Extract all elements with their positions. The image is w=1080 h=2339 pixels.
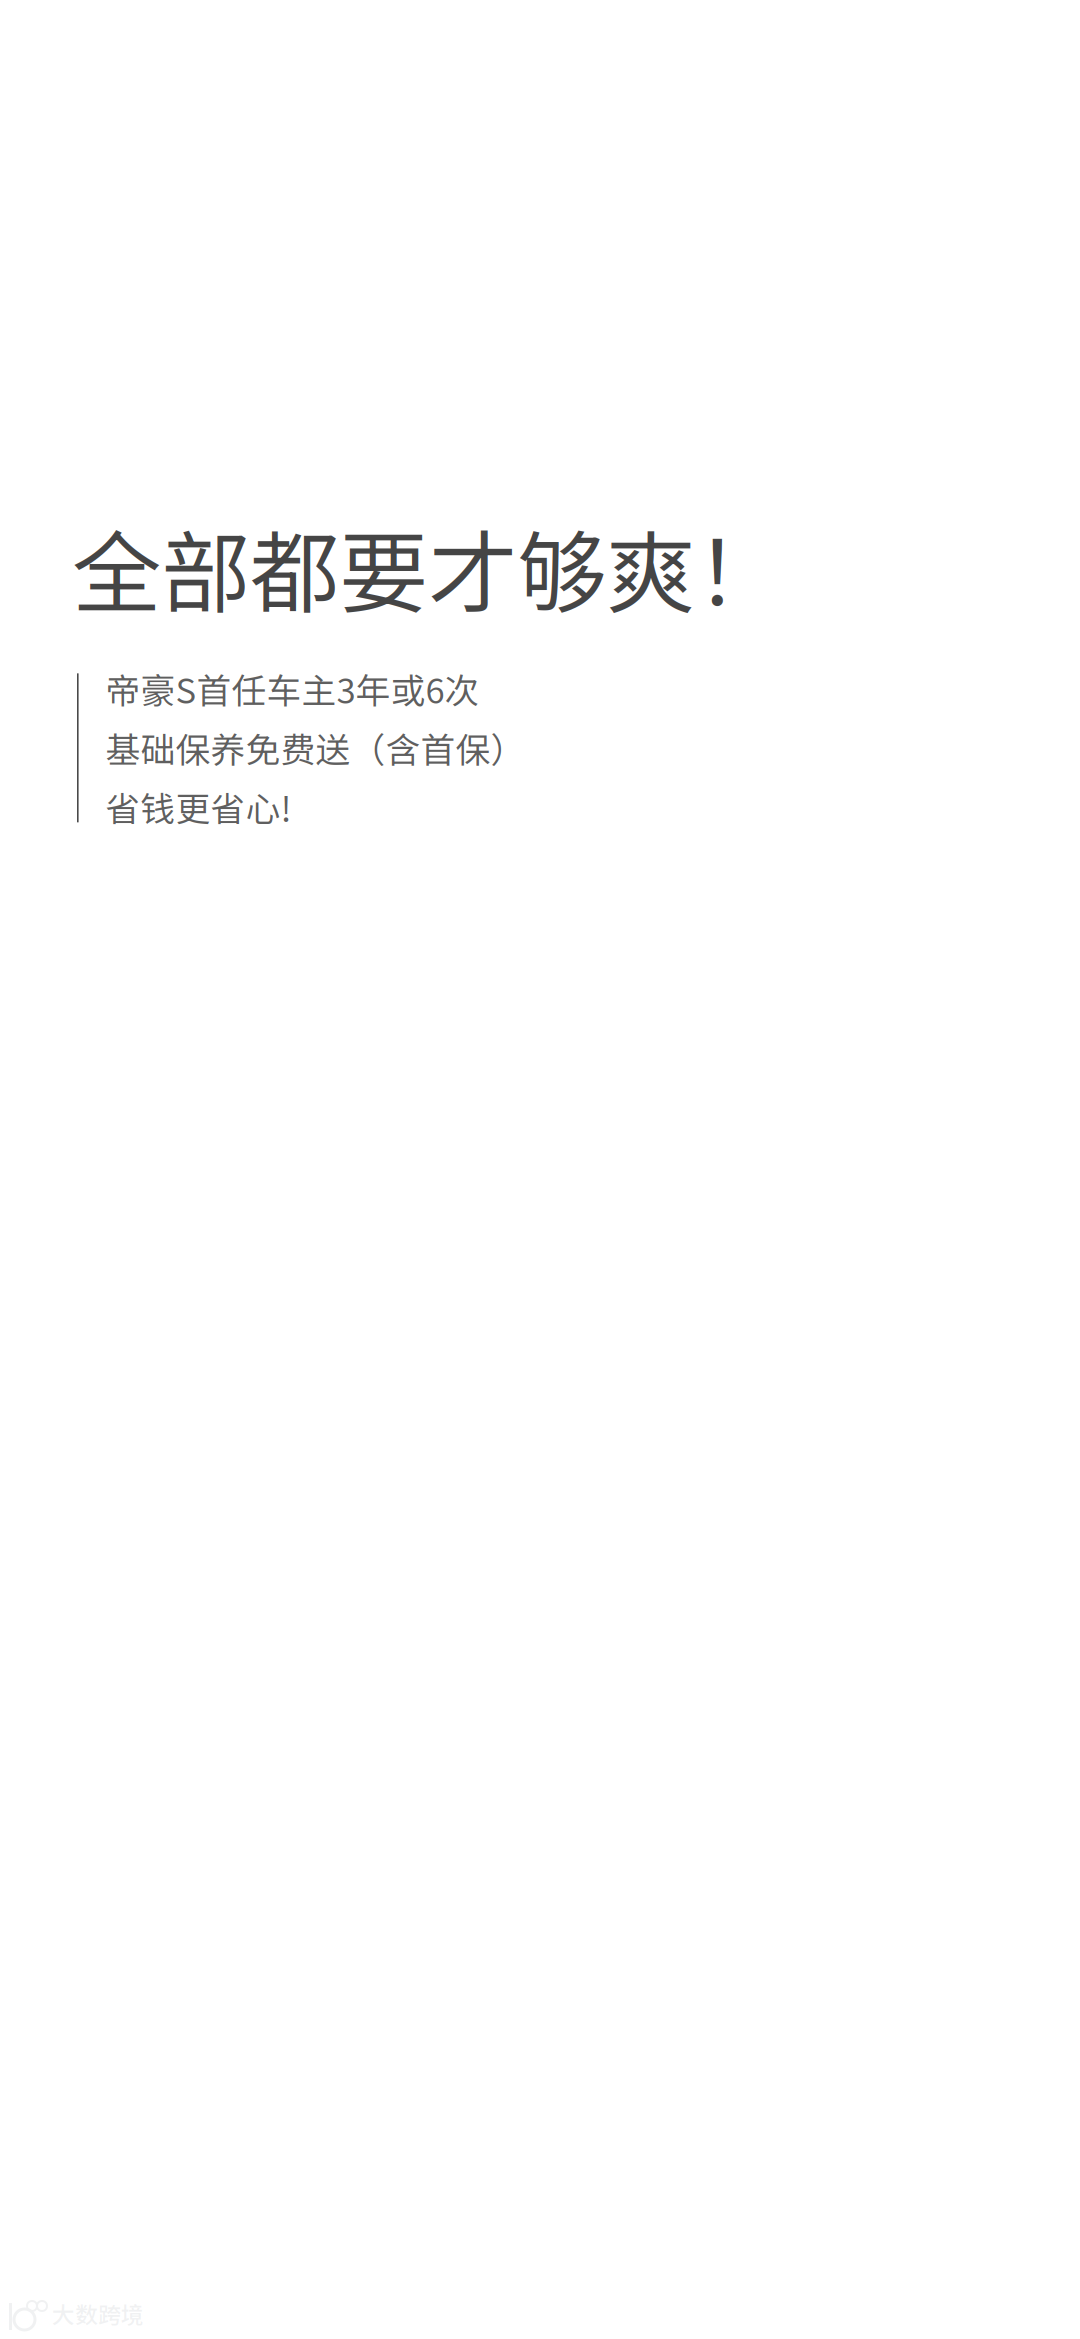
staticText: 大数跨境 <box>52 2297 144 2330</box>
staticText: 帝豪S首任车主3年或6次 <box>106 663 480 714</box>
staticText: 省钱更省心! <box>106 782 292 832</box>
staticText: 基础保养免费送（含首保） <box>106 723 526 773</box>
staticText: 全部都要才够爽！ <box>72 502 784 631</box>
